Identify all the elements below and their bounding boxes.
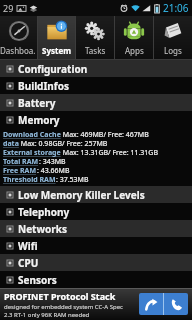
staticText: Total RAM	[3, 157, 39, 166]
staticText: Networks	[18, 222, 67, 236]
staticText: Wifi	[18, 239, 38, 253]
button[interactable]: Apps	[115, 16, 153, 59]
button[interactable]: Configuration	[0, 60, 192, 77]
button[interactable]: PROFINET Protocol Stack	[0, 288, 192, 320]
staticText: designed for embedded system CC-A Spec	[4, 303, 123, 311]
button[interactable]: BuildInfos	[0, 77, 192, 94]
button[interactable]: Memory	[0, 111, 192, 128]
staticText: External storage	[3, 148, 61, 157]
staticText: : 43.66MB	[37, 166, 70, 175]
staticText: Sensors	[18, 273, 57, 287]
staticText: Free RAM	[3, 166, 37, 175]
staticText: 2.3 RT-1 only 96K RAM needed	[4, 311, 90, 319]
staticText: Logs	[164, 45, 182, 56]
staticText: Low Memory Killer Levels	[18, 188, 145, 202]
staticText: 29	[3, 2, 14, 14]
staticText: : 37.53MB	[56, 175, 89, 184]
staticText: Max: 13.31GB/ Free: 11.31GB	[61, 148, 158, 157]
staticText: Download Cache	[3, 130, 61, 139]
staticText: Telephony	[18, 205, 70, 219]
staticText: BuildInfos	[18, 79, 69, 93]
button[interactable]: System	[38, 16, 75, 59]
staticText: Battery	[18, 96, 56, 110]
staticText: System	[42, 45, 72, 56]
staticText: Configuration	[18, 62, 88, 76]
button[interactable]: CPU	[0, 254, 192, 271]
button[interactable]: Call advertiser	[164, 293, 188, 315]
staticText: data	[3, 139, 19, 148]
button[interactable]: Open advertisement	[139, 293, 163, 315]
staticText: Tasks	[85, 45, 106, 56]
staticText: : 343MB	[39, 157, 66, 166]
button[interactable]: Logs	[154, 16, 192, 59]
staticText: Max: 0.98GB/ Free: 257MB	[19, 139, 108, 148]
button[interactable]: Telephony	[0, 203, 192, 220]
button[interactable]: Low Memory Killer Levels	[0, 186, 192, 203]
button[interactable]: Wifi	[0, 237, 192, 254]
staticText: 21:06	[163, 1, 189, 15]
button[interactable]: Sensors	[0, 271, 192, 288]
staticText: Dashboa..	[0, 45, 37, 56]
staticText: CPU	[18, 256, 39, 270]
staticText: Memory	[18, 113, 60, 127]
staticText: Max: 469MB/ Free: 467MB	[61, 130, 149, 139]
staticText: Apps	[125, 45, 144, 56]
staticText: PROFINET Protocol Stack	[4, 290, 116, 302]
staticText: Threshold RAM	[3, 175, 56, 184]
button[interactable]: Battery	[0, 94, 192, 111]
button[interactable]: Tasks	[76, 16, 114, 59]
button[interactable]: Networks	[0, 220, 192, 237]
button[interactable]: Dashboa..	[0, 16, 37, 59]
